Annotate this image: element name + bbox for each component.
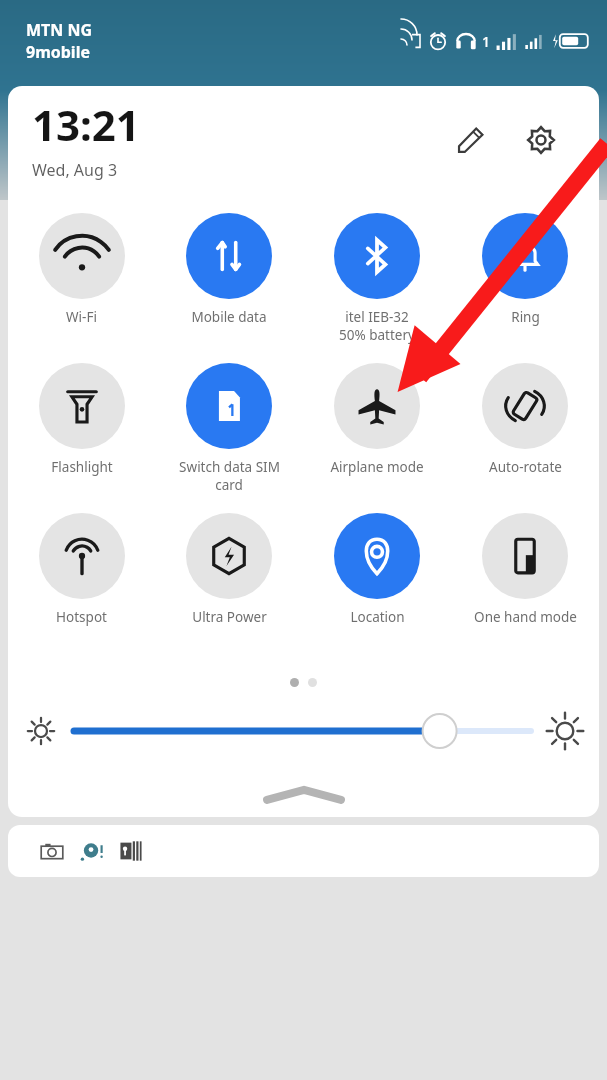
- button[interactable]: Switch data SIM: [155, 363, 303, 513]
- button[interactable]: Hotspot: [8, 513, 155, 663]
- staticText: 50% battery: [339, 326, 415, 344]
- button[interactable]: Edit: [449, 118, 493, 162]
- button[interactable]: One hand mode: [451, 513, 599, 663]
- staticText: Flashlight: [51, 458, 113, 476]
- button[interactable]: Settings: [519, 118, 563, 162]
- staticText: Auto-rotate: [489, 458, 562, 476]
- staticText: Ring: [511, 308, 540, 326]
- staticText: MTN NG: [26, 19, 93, 41]
- staticText: 1: [482, 32, 491, 51]
- button[interactable]: Ring: [451, 213, 599, 363]
- staticText: Airplane mode: [330, 458, 424, 476]
- button[interactable]: Flashlight: [8, 363, 155, 513]
- button[interactable]: Location: [303, 513, 451, 663]
- staticText: Wed, Aug 3: [32, 159, 118, 181]
- staticText: Wi-Fi: [66, 308, 97, 326]
- button[interactable]: Ultra Power: [155, 513, 303, 663]
- button[interactable]: Wi-Fi: [8, 213, 155, 363]
- staticText: Switch data SIM: [179, 458, 280, 476]
- button[interactable]: Auto-rotate: [451, 363, 599, 513]
- button[interactable]: Airplane mode: [303, 363, 451, 513]
- staticText: Location: [350, 608, 405, 626]
- staticText: One hand mode: [474, 608, 577, 626]
- staticText: 13:21: [32, 96, 140, 153]
- staticText: itel IEB-32: [345, 308, 409, 326]
- staticText: Hotspot: [56, 608, 107, 626]
- button[interactable]: [8, 825, 599, 877]
- staticText: 9mobile: [26, 41, 90, 63]
- button[interactable]: itel IEB-32: [303, 213, 451, 363]
- button[interactable]: Mobile data: [155, 213, 303, 363]
- staticText: Mobile data: [191, 308, 267, 326]
- staticText: Ultra Power: [192, 608, 267, 626]
- staticText: card: [215, 476, 243, 494]
